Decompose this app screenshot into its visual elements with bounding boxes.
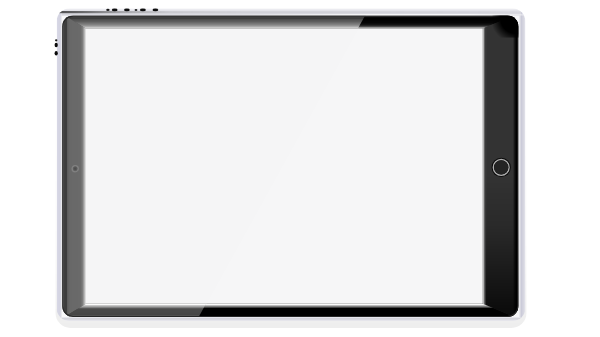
other: Tablet device mockup with blank screen (0, 0, 600, 337)
